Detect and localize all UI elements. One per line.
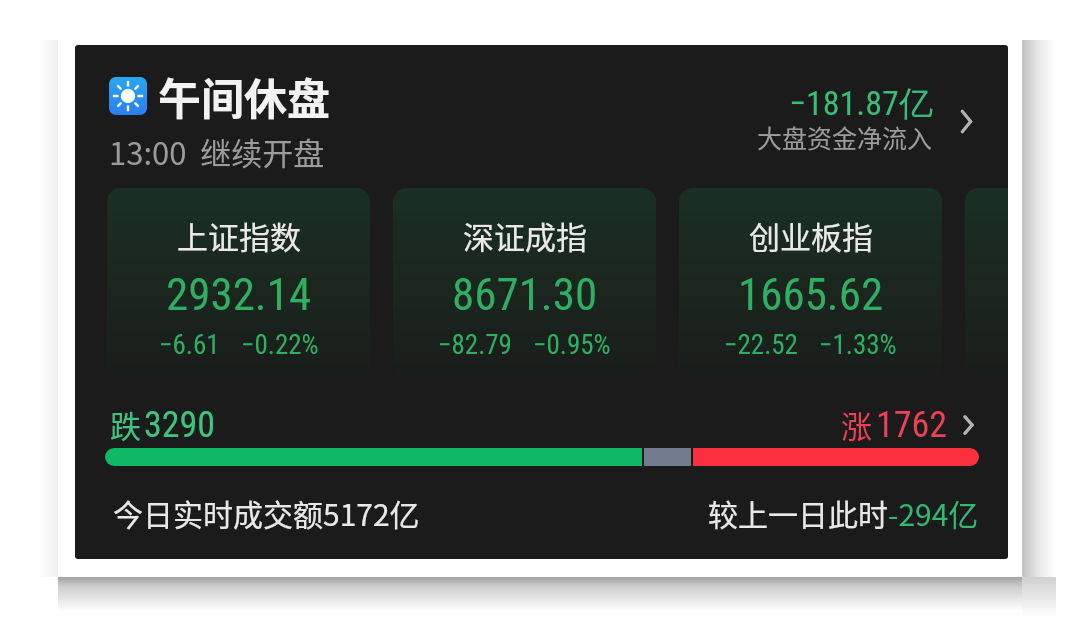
button[interactable]: 科创50指 xyxy=(965,188,1008,377)
button[interactable]: 创业板指 xyxy=(679,188,942,377)
staticText: −0.22% xyxy=(241,329,319,361)
button[interactable]: 涨 xyxy=(841,402,948,447)
staticText: 深证成指 xyxy=(463,213,587,258)
staticText: 3290 xyxy=(144,404,216,446)
staticText: −0.95% xyxy=(533,329,611,361)
staticText: −1.33% xyxy=(819,329,897,361)
staticText: −6.61 xyxy=(159,329,220,361)
staticText: 较上一日此时 xyxy=(708,491,888,534)
button[interactable]: 跌 xyxy=(110,402,216,447)
button[interactable]: 深证成指 xyxy=(393,188,656,377)
staticText: 8671.30 xyxy=(452,268,598,321)
staticText: 1762 xyxy=(876,404,948,446)
staticText: 2932.14 xyxy=(166,268,312,321)
staticText: -294亿 xyxy=(888,491,979,534)
button[interactable]: More market flow xyxy=(959,108,974,135)
staticText: 13:00 继续开盘 xyxy=(109,129,325,174)
staticText: 上证指数 xyxy=(177,213,301,258)
staticText: −22.52 xyxy=(724,329,798,361)
staticText: 1665.62 xyxy=(738,268,884,321)
staticText: 跌 xyxy=(110,402,141,447)
button[interactable]: Up down detail xyxy=(962,414,975,436)
staticText: 创业板指 xyxy=(749,213,873,258)
button[interactable]: 今日实时成交额5172亿 xyxy=(113,491,420,534)
staticText: 大盘资金净流入 xyxy=(757,119,933,155)
staticText: −181.87亿 xyxy=(789,82,933,125)
button[interactable]: 午间休盘 xyxy=(109,65,330,174)
staticText: 涨 xyxy=(841,402,872,447)
staticText: −82.79 xyxy=(438,329,512,361)
staticText: 午间休盘 xyxy=(158,65,330,127)
button[interactable]: −181.87亿 xyxy=(757,82,974,161)
button[interactable]: 上证指数 xyxy=(107,188,370,377)
button[interactable]: 较上一日此时 xyxy=(708,491,979,534)
